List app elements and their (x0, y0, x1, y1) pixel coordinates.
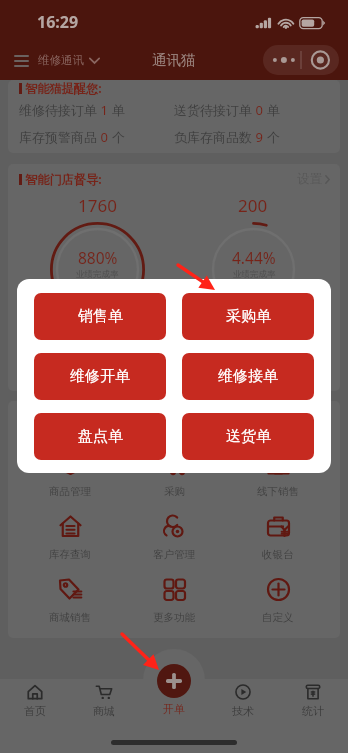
button[interactable]: 自定义 (226, 566, 330, 629)
button[interactable]: More options (263, 45, 339, 75)
staticText: 业绩完成率 (76, 269, 119, 280)
staticText: 通讯猫 (152, 51, 196, 69)
staticText: 0% (243, 350, 265, 371)
button[interactable]: 盘点单 (34, 413, 166, 460)
staticText: 客户管理 (153, 548, 195, 561)
staticText: 200 (238, 194, 268, 217)
staticText: 盘点单 (78, 427, 123, 446)
button[interactable]: 维修开单 (34, 353, 166, 400)
staticText: 1 (97, 101, 112, 119)
staticText: 维修接单 (218, 367, 278, 386)
button[interactable]: 开单 New order (157, 664, 191, 698)
staticText: 技术 (232, 704, 254, 718)
staticText: 库存预警商品 (19, 129, 97, 145)
staticText: 业绩完成率 (233, 269, 276, 280)
staticText: 0 (97, 128, 112, 146)
button[interactable]: 客户管理 (122, 503, 226, 566)
staticText: 更多功能 (153, 611, 195, 624)
staticText: 商城 (93, 704, 115, 718)
staticText: 业绩完成率 (232, 372, 275, 383)
staticText: 统计 (302, 704, 324, 718)
staticText: 采购单 (226, 307, 271, 326)
staticText: 商品管理 (49, 485, 91, 498)
staticText: 商城销售 (49, 611, 91, 624)
staticText: 自定义 (262, 611, 294, 624)
button[interactable]: 收银台 (226, 503, 330, 566)
staticText: 9 (252, 128, 267, 146)
staticText: 收银台 (262, 548, 294, 561)
staticText: 16:29 (37, 11, 79, 33)
button[interactable]: 维修接单 (182, 353, 314, 400)
button[interactable]: 库存查询 (18, 503, 122, 566)
button[interactable]: 首页 (0, 679, 69, 727)
staticText: 个 (267, 129, 280, 145)
button[interactable]: 统计 (278, 679, 348, 727)
button[interactable]: 采购 (122, 440, 226, 503)
staticText: 智能门店督导: (25, 171, 102, 188)
staticText: 智能猫提醒您: (25, 80, 102, 97)
staticText: 维修通讯 (38, 53, 84, 67)
staticText: 送货待接订单 (174, 102, 252, 118)
staticText: 首页 (24, 704, 46, 718)
button[interactable]: Menu (6, 45, 36, 75)
button[interactable]: 技术 (208, 679, 278, 727)
staticText: 4.44% (232, 247, 276, 268)
button[interactable]: 设置 (295, 168, 332, 190)
staticText: 880% (78, 247, 118, 268)
staticText: 维修待接订单 (19, 102, 97, 118)
button[interactable]: 销售单 (34, 293, 166, 340)
staticText: 1760 (78, 194, 117, 217)
staticText: 个 (112, 129, 125, 145)
staticText: 0 (92, 325, 102, 348)
staticText: 单 (267, 102, 280, 118)
staticText: 采购 (164, 485, 185, 498)
staticText: 0% (87, 350, 109, 371)
staticText: 0 (252, 101, 267, 119)
staticText: 负库存商品数 (174, 129, 252, 145)
button[interactable]: 商城 (69, 679, 138, 727)
staticText: 送货单 (226, 427, 271, 446)
staticText: 单 (112, 102, 125, 118)
staticText: 维修开单 (70, 367, 130, 386)
staticText: 设置 (297, 171, 322, 187)
button[interactable]: 送货单 (182, 413, 314, 460)
button[interactable]: 商城销售 (18, 566, 122, 629)
button[interactable]: 更多功能 (122, 566, 226, 629)
staticText: 线下销售 (257, 485, 299, 498)
staticText: 销售单 (78, 307, 123, 326)
staticText: 0 (248, 325, 258, 348)
staticText: 库存查询 (49, 548, 91, 561)
staticText: 业绩完成率 (76, 372, 119, 383)
button[interactable]: 维修通讯 (36, 47, 102, 73)
staticText: 开单 (163, 702, 185, 716)
button[interactable]: 线下销售 (226, 440, 330, 503)
button[interactable]: 商品管理 (18, 440, 122, 503)
button[interactable]: 采购单 (182, 293, 314, 340)
